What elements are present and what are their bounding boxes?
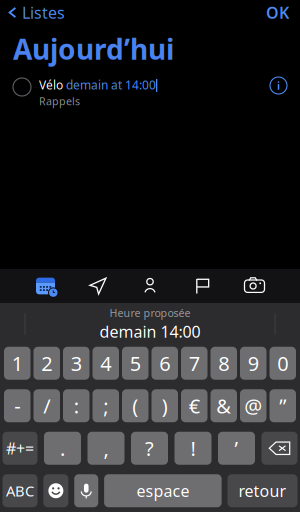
button[interactable]: ’: [218, 432, 255, 465]
button[interactable]: 7: [181, 347, 207, 380]
button[interactable]: Person: [128, 269, 172, 303]
staticText: demain 14:00: [99, 321, 200, 342]
button[interactable]: Dictate: [74, 474, 98, 507]
button[interactable]: ;: [92, 389, 119, 422]
staticText: demain at 14:00: [66, 77, 156, 93]
button[interactable]: -: [4, 389, 30, 422]
staticText: Heure proposée: [109, 306, 190, 320]
button[interactable]: Flag: [180, 269, 224, 303]
button[interactable]: ,: [87, 432, 124, 465]
staticText: Listes: [22, 2, 65, 23]
button[interactable]: Camera: [232, 269, 276, 303]
staticText: 3: [71, 350, 82, 377]
button[interactable]: Listes: [0, 0, 65, 31]
staticText: €: [189, 392, 200, 419]
staticText: Rappels: [39, 94, 80, 108]
staticText: 5: [130, 350, 141, 377]
button[interactable]: ): [151, 389, 178, 422]
staticText: ’: [234, 435, 238, 462]
staticText: -: [14, 392, 20, 419]
staticText: ): [162, 392, 168, 419]
staticText: ”: [279, 392, 286, 419]
staticText: ?: [145, 435, 154, 462]
staticText: retour: [238, 480, 286, 501]
button[interactable]: Mark complete: [0, 77, 37, 96]
button[interactable]: /: [33, 389, 60, 422]
staticText: Vélo: [39, 77, 66, 93]
staticText: Aujourd’hui: [13, 30, 174, 68]
staticText: OK: [266, 2, 289, 23]
button[interactable]: 9: [240, 347, 266, 380]
staticText: ,: [103, 435, 108, 462]
staticText: 4: [100, 350, 111, 377]
button[interactable]: 8: [210, 347, 237, 380]
staticText: &: [216, 392, 231, 419]
button[interactable]: .: [44, 432, 81, 465]
staticText: ABC: [6, 481, 34, 500]
button[interactable]: ”: [269, 389, 296, 422]
button[interactable]: espace: [104, 474, 222, 507]
button[interactable]: !: [174, 432, 211, 465]
staticText: 1: [12, 350, 23, 377]
button[interactable]: ?: [131, 432, 168, 465]
button[interactable]: 0: [269, 347, 296, 380]
button[interactable]: &: [210, 389, 237, 422]
staticText: #+=: [6, 438, 34, 459]
button[interactable]: :: [63, 389, 89, 422]
button[interactable]: Details: [264, 77, 300, 94]
button[interactable]: 3: [63, 347, 89, 380]
button[interactable]: 6: [151, 347, 178, 380]
button[interactable]: retour: [227, 474, 297, 507]
button[interactable]: €: [181, 389, 207, 422]
button[interactable]: 5: [122, 347, 148, 380]
staticText: 8: [218, 350, 229, 377]
button[interactable]: OK: [266, 0, 300, 31]
staticText: @: [244, 392, 262, 419]
button[interactable]: Heure proposée: [25, 303, 274, 345]
staticText: (: [132, 392, 138, 419]
button[interactable]: #+=: [2, 432, 37, 465]
staticText: .: [60, 435, 65, 462]
button[interactable]: (: [122, 389, 148, 422]
button[interactable]: 1: [4, 347, 30, 380]
button[interactable]: ABC: [2, 474, 37, 507]
staticText: /: [43, 392, 50, 419]
staticText: :: [74, 392, 79, 419]
staticText: 0: [277, 350, 288, 377]
button[interactable]: 2: [33, 347, 60, 380]
button[interactable]: 4: [92, 347, 119, 380]
staticText: 6: [159, 350, 170, 377]
button[interactable]: Emoji: [43, 474, 68, 507]
staticText: espace: [136, 480, 189, 501]
staticText: 9: [248, 350, 259, 377]
button[interactable]: Date and time: [23, 269, 67, 303]
button[interactable]: Delete: [261, 432, 297, 465]
button[interactable]: @: [240, 389, 266, 422]
staticText: ;: [103, 392, 108, 419]
button[interactable]: Location: [76, 269, 120, 303]
staticText: !: [190, 435, 195, 462]
staticText: 7: [189, 350, 200, 377]
staticText: 2: [41, 350, 52, 377]
